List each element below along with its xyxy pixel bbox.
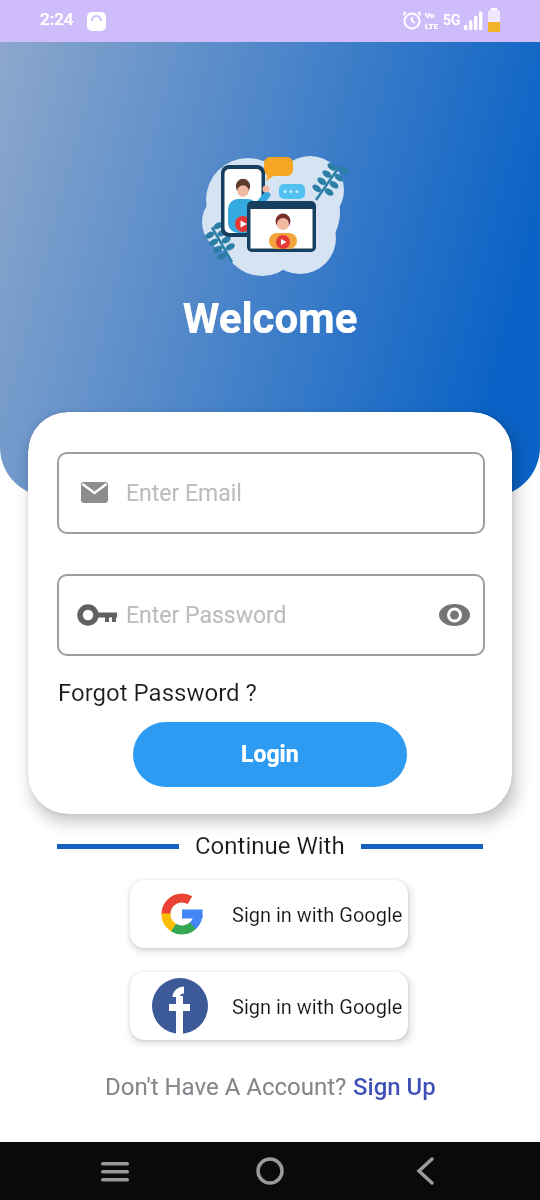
staticText: Enter Email bbox=[126, 480, 242, 507]
staticText: Forgot Password ? bbox=[58, 679, 257, 707]
staticText: Sign Up bbox=[353, 1073, 436, 1101]
staticText: Enter Password bbox=[126, 602, 287, 629]
staticText: Sign in with Google bbox=[232, 995, 403, 1018]
staticText: Login bbox=[241, 741, 299, 768]
staticText: Vo LTE bbox=[425, 11, 438, 31]
staticText: Continue With bbox=[195, 832, 345, 860]
staticText: 2:24 bbox=[40, 9, 74, 29]
staticText: Don't Have A Account? bbox=[105, 1073, 353, 1101]
staticText: Sign in with Google bbox=[232, 903, 403, 926]
staticText: 5G bbox=[443, 12, 461, 28]
staticText: Welcome bbox=[0, 294, 540, 343]
